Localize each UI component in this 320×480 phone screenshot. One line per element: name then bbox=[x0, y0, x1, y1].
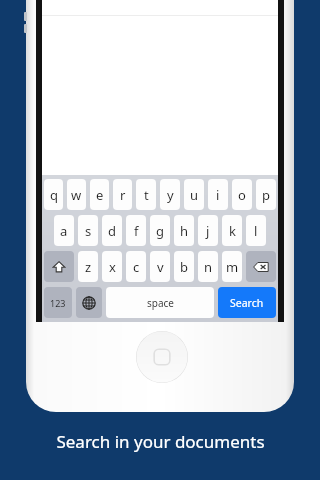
button[interactable]: r bbox=[113, 179, 132, 210]
button[interactable]: u bbox=[184, 179, 204, 210]
staticText: o bbox=[238, 186, 246, 204]
staticText: 123 bbox=[50, 297, 66, 309]
button[interactable]: a bbox=[54, 215, 74, 246]
staticText: u bbox=[190, 186, 199, 204]
button[interactable]: f bbox=[126, 215, 146, 246]
staticText: s bbox=[85, 222, 92, 240]
button[interactable]: y bbox=[160, 179, 180, 210]
staticText: g bbox=[156, 222, 164, 240]
staticText: j bbox=[206, 222, 210, 240]
staticText: f bbox=[134, 222, 139, 240]
button[interactable]: o bbox=[232, 179, 252, 210]
button[interactable]: Home bbox=[136, 331, 188, 383]
staticText: h bbox=[180, 222, 189, 240]
staticText: l bbox=[254, 222, 258, 240]
button[interactable]: Search bbox=[218, 287, 276, 318]
button[interactable]: l bbox=[246, 215, 266, 246]
button[interactable]: k bbox=[222, 215, 242, 246]
button[interactable]: w bbox=[67, 179, 86, 210]
staticText: k bbox=[229, 222, 236, 240]
staticText: i bbox=[216, 186, 220, 204]
staticText: Search bbox=[230, 296, 264, 310]
button[interactable]: g bbox=[150, 215, 170, 246]
button[interactable]: p bbox=[256, 179, 276, 210]
staticText: z bbox=[85, 258, 92, 276]
button[interactable]: e bbox=[90, 179, 109, 210]
button[interactable]: 123 bbox=[44, 287, 72, 318]
button[interactable]: z bbox=[78, 251, 98, 282]
staticText: d bbox=[108, 222, 116, 240]
staticText: p bbox=[262, 186, 270, 204]
staticText: r bbox=[120, 186, 126, 204]
staticText: b bbox=[180, 258, 188, 276]
button[interactable]: s bbox=[78, 215, 98, 246]
button[interactable]: m bbox=[222, 251, 242, 282]
button[interactable]: c bbox=[126, 251, 146, 282]
staticText: y bbox=[167, 186, 174, 204]
button[interactable]: d bbox=[102, 215, 122, 246]
button[interactable]: t bbox=[136, 179, 156, 210]
button[interactable]: space bbox=[106, 287, 214, 318]
button[interactable]: v bbox=[150, 251, 170, 282]
staticText: a bbox=[60, 222, 68, 240]
staticText: n bbox=[204, 258, 213, 276]
button[interactable]: x bbox=[102, 251, 122, 282]
button[interactable]: h bbox=[174, 215, 194, 246]
button[interactable]: i bbox=[208, 179, 228, 210]
staticText: q bbox=[50, 186, 58, 204]
staticText: space bbox=[147, 296, 174, 310]
staticText: v bbox=[157, 258, 164, 276]
button[interactable]: j bbox=[198, 215, 218, 246]
staticText: x bbox=[109, 258, 116, 276]
button[interactable]: n bbox=[198, 251, 218, 282]
button[interactable]: Change keyboard bbox=[76, 287, 102, 318]
staticText: c bbox=[133, 258, 140, 276]
button[interactable]: Shift bbox=[44, 251, 74, 282]
staticText: e bbox=[96, 186, 104, 204]
button[interactable]: q bbox=[44, 179, 63, 210]
staticText: w bbox=[71, 186, 82, 204]
staticText: t bbox=[144, 186, 149, 204]
staticText: m bbox=[226, 258, 239, 276]
staticText: Search in your documents bbox=[56, 430, 265, 453]
button[interactable]: b bbox=[174, 251, 194, 282]
button[interactable]: Backspace bbox=[246, 251, 276, 282]
